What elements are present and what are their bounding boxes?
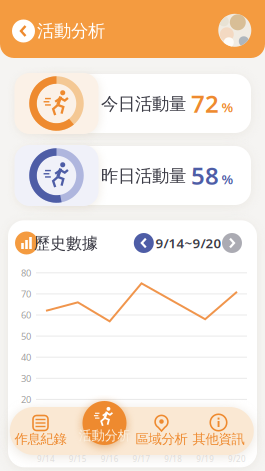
- button[interactable]: Next week: [222, 233, 242, 253]
- staticText: 9/14~9/20: [155, 234, 221, 252]
- button[interactable]: 區域分析: [131, 412, 191, 446]
- button[interactable]: 其他資訊: [188, 412, 248, 446]
- staticText: %: [221, 170, 233, 188]
- staticText: 58: [191, 160, 219, 191]
- staticText: 今日活動量: [101, 93, 186, 115]
- staticText: 70: [21, 288, 31, 300]
- button[interactable]: Back: [12, 19, 35, 42]
- button[interactable]: 作息紀錄: [10, 412, 70, 446]
- staticText: 9/14: [37, 454, 55, 464]
- staticText: 9/20: [228, 454, 246, 464]
- staticText: 9/15: [69, 454, 87, 464]
- button[interactable]: Profile: [218, 14, 251, 47]
- staticText: 30: [21, 372, 31, 384]
- staticText: 80: [21, 267, 31, 279]
- staticText: 60: [21, 309, 31, 321]
- staticText: 其他資訊: [192, 431, 244, 447]
- staticText: 作息紀錄: [14, 431, 66, 447]
- staticText: 9/19: [196, 454, 214, 464]
- staticText: 9/17: [132, 454, 150, 464]
- staticText: 歷史數據: [34, 234, 98, 253]
- staticText: 40: [21, 351, 31, 363]
- staticText: 9/18: [164, 454, 182, 464]
- staticText: 50: [21, 330, 31, 342]
- staticText: %: [221, 98, 233, 116]
- button[interactable]: 活動分析: [82, 401, 126, 445]
- staticText: 20: [21, 393, 31, 406]
- staticText: 區域分析: [135, 431, 187, 447]
- button[interactable]: Previous week: [134, 233, 154, 253]
- staticText: 9/16: [101, 454, 119, 464]
- staticText: 活動分析: [37, 20, 105, 42]
- staticText: 昨日活動量: [101, 165, 186, 187]
- staticText: 72: [191, 88, 219, 119]
- staticText: 活動分析: [78, 427, 130, 444]
